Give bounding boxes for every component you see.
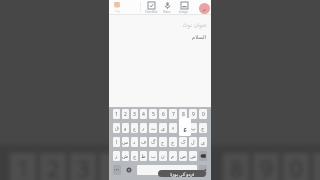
staticText: م [171, 153, 175, 159]
button[interactable]: 3 [131, 109, 138, 119]
button[interactable]: ح [159, 137, 167, 147]
staticText: ء [183, 124, 188, 134]
button[interactable]: ء [169, 123, 177, 133]
staticText: ح [161, 139, 165, 145]
staticText: ء [172, 125, 175, 131]
button[interactable]: Voice [159, 0, 175, 14]
staticText: السلام [109, 34, 206, 40]
button[interactable]: ہ [179, 123, 187, 133]
button[interactable]: Enter [199, 165, 207, 175]
staticText: د [133, 139, 136, 145]
button[interactable]: ف [140, 137, 147, 147]
button[interactable]: Checklist [143, 0, 159, 14]
button[interactable]: ض [189, 151, 197, 161]
staticText: ل [191, 139, 195, 145]
staticText: م [203, 6, 207, 12]
staticText: اردو کی بورڈ [170, 171, 195, 177]
button[interactable]: گ [149, 137, 157, 147]
staticText: 6 [162, 111, 165, 118]
button[interactable]: و [122, 123, 129, 133]
button[interactable]: ع [131, 123, 138, 133]
staticText: ک [181, 139, 186, 145]
button[interactable]: Account [199, 3, 210, 14]
button[interactable]: چ [199, 123, 207, 133]
button[interactable]: ؟۱۲ [113, 165, 121, 175]
staticText: ج [171, 139, 175, 145]
button[interactable]: Space [137, 165, 197, 175]
staticText: 3 [133, 111, 136, 118]
button[interactable]: 6 [159, 109, 167, 119]
staticText: Voice [163, 10, 171, 14]
button[interactable]: ت [149, 123, 157, 133]
button[interactable]: 8 [179, 109, 187, 119]
button[interactable]: م [169, 151, 177, 161]
button[interactable]: ی [159, 123, 167, 133]
staticText: 0 [202, 111, 205, 118]
button[interactable]: 9 [189, 109, 197, 119]
button[interactable]: ط [140, 151, 147, 161]
button[interactable]: 4 [140, 109, 147, 119]
button[interactable]: پ [189, 123, 197, 133]
button[interactable]: Settings [122, 165, 136, 175]
staticText: ص [180, 153, 187, 159]
button[interactable]: ج [169, 137, 177, 147]
staticText: 8 [182, 111, 185, 118]
staticText: 4 [142, 111, 145, 118]
button[interactable]: ل [189, 137, 197, 147]
button[interactable]: ی [199, 137, 207, 147]
staticText: چ [133, 153, 137, 159]
button[interactable]: س [122, 137, 129, 147]
staticText: ب [151, 153, 156, 159]
button[interactable]: Formatting [110, 1, 123, 14]
button[interactable]: ز [113, 151, 120, 161]
staticText: • [169, 168, 171, 173]
button[interactable]: 1 [113, 109, 120, 119]
staticText: ق [115, 125, 119, 131]
button[interactable]: 5 [149, 109, 157, 119]
button[interactable]: 0 [199, 109, 207, 119]
button[interactable]: ش [122, 151, 129, 161]
staticText: 2 [124, 111, 127, 118]
button[interactable]: ب [149, 151, 157, 161]
staticText: Image [179, 10, 189, 14]
button[interactable]: اردو کی بورڈ [158, 170, 206, 177]
button[interactable]: ر [140, 123, 147, 133]
button[interactable]: Image [176, 0, 192, 14]
staticText: 9 [192, 111, 195, 118]
staticText: ر [142, 125, 145, 131]
staticText: ز [115, 153, 118, 159]
staticText: 7 [172, 111, 175, 118]
button[interactable]: 7 [169, 109, 177, 119]
staticText: عنوان نوٹ [109, 21, 207, 28]
staticText: ی [161, 125, 165, 131]
staticText: گ [151, 139, 156, 145]
button[interactable]: ن [159, 151, 167, 161]
button[interactable]: ک [179, 137, 187, 147]
button[interactable]: ص [179, 151, 187, 161]
button[interactable]: ق [113, 123, 120, 133]
staticText: ع [133, 125, 136, 131]
button[interactable]: چ [131, 151, 138, 161]
staticText: ہ [182, 125, 185, 131]
staticText: س [122, 139, 129, 145]
button[interactable]: Backspace [199, 151, 207, 161]
staticText: ا [116, 139, 118, 145]
staticText: پ [191, 125, 196, 131]
staticText: 5 [152, 111, 155, 118]
button[interactable]: ا [113, 137, 120, 147]
button[interactable]: Key preview [179, 118, 191, 136]
staticText: نوٹ [115, 9, 120, 12]
staticText: ی [201, 139, 205, 145]
staticText: ض [190, 153, 197, 159]
staticText: چ [201, 125, 205, 131]
staticText: Checklist [145, 10, 158, 14]
staticText: 1 [115, 111, 118, 118]
button[interactable]: 2 [122, 109, 129, 119]
staticText: و [124, 125, 127, 131]
button[interactable]: د [131, 137, 138, 147]
